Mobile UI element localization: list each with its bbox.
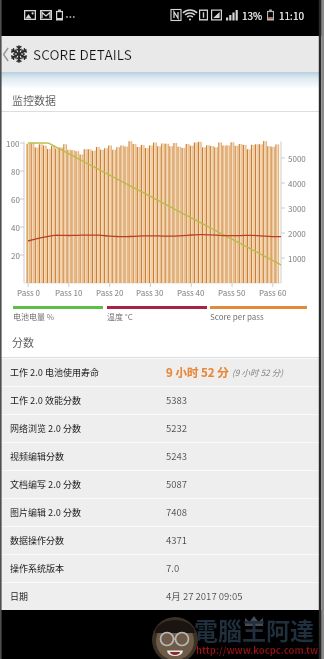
staticText: 60 bbox=[11, 194, 20, 206]
staticText: 5232 bbox=[166, 421, 188, 435]
staticText: Pass 20 bbox=[96, 287, 124, 299]
staticText: Pass 60 bbox=[259, 287, 287, 299]
staticText: 5243 bbox=[166, 449, 188, 463]
button[interactable]: 图片编辑 2.0 分数 bbox=[0, 498, 324, 526]
staticText: 4月 27 2017 09:05 bbox=[166, 589, 243, 603]
button[interactable]: 工作 2.0 电池使用寿命 bbox=[0, 358, 324, 386]
button[interactable]: 温度 °C bbox=[107, 306, 207, 323]
staticText: 3000 bbox=[288, 203, 306, 215]
staticText: 网络浏览 2.0 分数 bbox=[10, 422, 166, 435]
staticText: 工作 2.0 效能分数 bbox=[10, 394, 166, 407]
staticText: 13% bbox=[242, 8, 263, 22]
staticText: 100 bbox=[6, 138, 20, 150]
staticText: 图片编辑 2.0 分数 bbox=[10, 506, 166, 519]
staticText: (9 小时 52 分) bbox=[232, 366, 284, 378]
staticText: Pass 0 bbox=[17, 287, 40, 299]
staticText: http://www.kocpc.com.tw bbox=[196, 643, 319, 657]
button[interactable]: 工作 2.0 效能分数 bbox=[0, 386, 324, 414]
staticText: 数据操作分数 bbox=[10, 534, 166, 547]
staticText: 温度 °C bbox=[107, 311, 133, 323]
staticText: 5087 bbox=[166, 477, 188, 491]
staticText: Pass 10 bbox=[55, 287, 83, 299]
staticText: 分数 bbox=[12, 334, 34, 350]
button[interactable]: 网络浏览 2.0 分数 bbox=[0, 414, 324, 442]
staticText: 4371 bbox=[166, 533, 188, 547]
staticText: 9 小时 52 分 bbox=[166, 364, 229, 381]
staticText: Pass 30 bbox=[136, 287, 164, 299]
staticText: 5383 bbox=[166, 393, 188, 407]
staticText: 7.0 bbox=[166, 561, 180, 575]
staticText: 工作 2.0 电池使用寿命 bbox=[10, 366, 166, 379]
staticText: 电池电量 % bbox=[13, 311, 55, 323]
button[interactable]: Recents bbox=[146, 620, 176, 650]
staticText: Pass 40 bbox=[177, 287, 205, 299]
button[interactable]: 视频编辑分数 bbox=[0, 442, 324, 470]
staticText: 電腦王阿達 bbox=[194, 612, 314, 647]
button[interactable]: Back bbox=[0, 39, 11, 69]
staticText: 5000 bbox=[288, 153, 306, 165]
button[interactable]: 电池电量 % bbox=[13, 306, 103, 323]
staticText: 7408 bbox=[166, 505, 188, 519]
staticText: 日期 bbox=[10, 590, 166, 603]
staticText: 文档编写 2.0 分数 bbox=[10, 478, 166, 491]
staticText: 40 bbox=[11, 222, 20, 234]
button[interactable]: 日期 bbox=[0, 582, 324, 610]
button[interactable]: 操作系统版本 bbox=[0, 554, 324, 582]
staticText: Pass 50 bbox=[218, 287, 246, 299]
staticText: 操作系统版本 bbox=[10, 562, 166, 575]
staticText: SCORE DETAILS bbox=[33, 44, 133, 64]
staticText: 4000 bbox=[288, 178, 306, 190]
button[interactable]: Score per pass bbox=[210, 306, 307, 323]
staticText: 80 bbox=[11, 166, 20, 178]
staticText: 视频编辑分数 bbox=[10, 450, 166, 463]
staticText: 1000 bbox=[288, 253, 306, 265]
button[interactable]: 数据操作分数 bbox=[0, 526, 324, 554]
staticText: 11:10 bbox=[279, 8, 304, 22]
staticText: 20 bbox=[11, 250, 20, 262]
button[interactable]: 文档编写 2.0 分数 bbox=[0, 470, 324, 498]
staticText: 监控数据 bbox=[12, 92, 56, 108]
staticText: Score per pass bbox=[210, 311, 264, 323]
staticText: 2000 bbox=[288, 228, 306, 240]
